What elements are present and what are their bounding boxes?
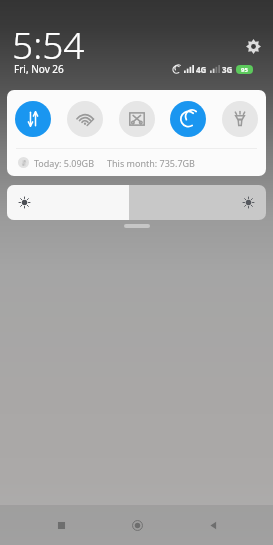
button[interactable]: Today: 5.09GB [7, 149, 266, 176]
staticText: 95 [241, 66, 248, 74]
button[interactable]: Mobile data [15, 101, 51, 137]
button[interactable]: Back [197, 509, 229, 541]
button[interactable]: Do not disturb [170, 101, 206, 137]
staticText: 3G [222, 64, 233, 75]
staticText: 4G [196, 64, 207, 75]
staticText: Today: 5.09GB [34, 157, 95, 169]
button[interactable]: Recents [45, 509, 77, 541]
button[interactable]: Flashlight [222, 101, 258, 137]
staticText: This month: 735.7GB [107, 157, 195, 169]
button[interactable]: Settings [240, 33, 266, 59]
button[interactable]: Home [121, 509, 153, 541]
staticText: Fri, Nov 26 [14, 62, 64, 76]
staticText: 5:54 [12, 19, 85, 69]
button[interactable] [7, 185, 266, 220]
button[interactable]: Wi-Fi [67, 101, 103, 137]
button[interactable]: Screenshot [119, 101, 155, 137]
